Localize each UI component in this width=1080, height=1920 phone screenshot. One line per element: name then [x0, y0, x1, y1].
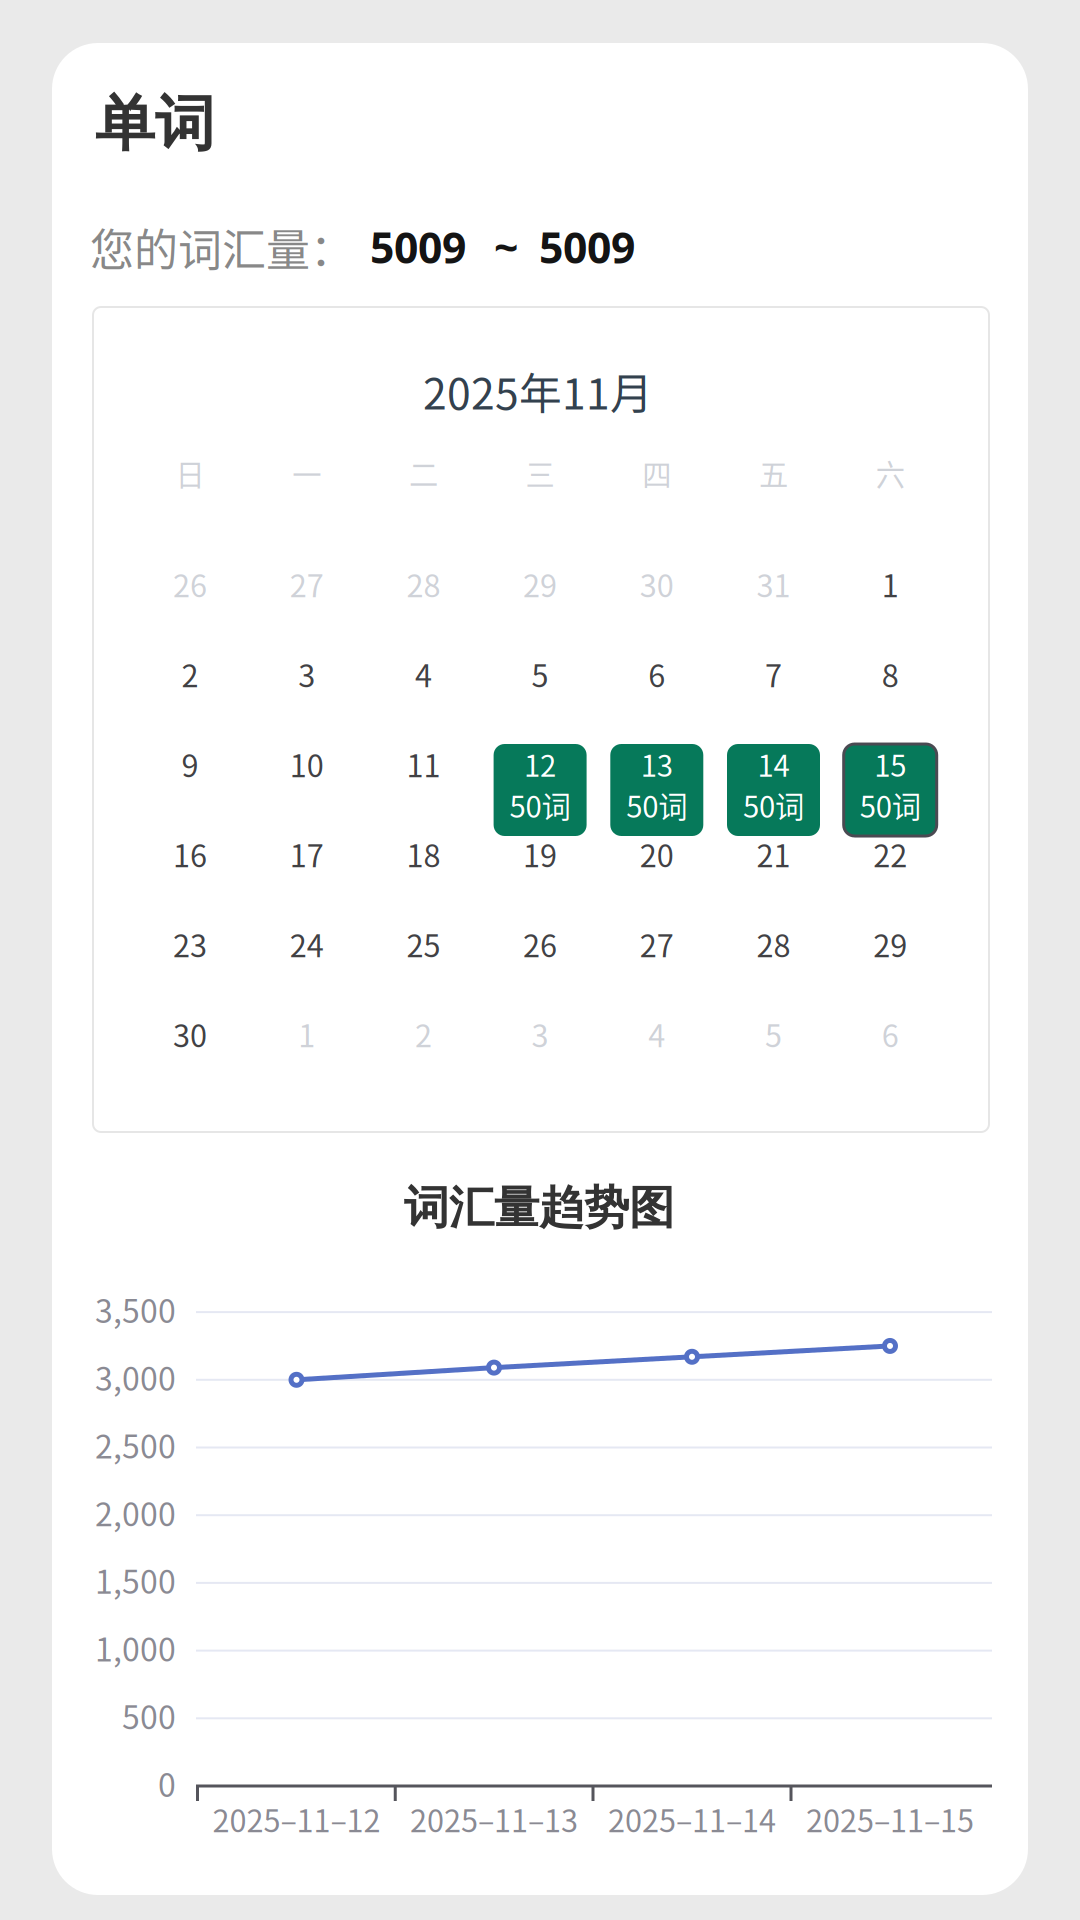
staticText: 8 — [882, 652, 899, 696]
button[interactable]: 1 — [832, 539, 949, 629]
staticText: 27 — [640, 922, 674, 966]
staticText: 2025–11–13 — [410, 1797, 578, 1841]
staticText: 50词 — [626, 784, 687, 826]
button[interactable]: 3 — [248, 629, 365, 719]
staticText: 5009 — [539, 218, 635, 276]
staticText: 12 — [524, 743, 556, 785]
button[interactable]: 24 — [248, 899, 365, 989]
staticText — [653, 742, 660, 786]
staticText: 3,500 — [95, 1286, 176, 1332]
staticText: 29 — [873, 922, 907, 966]
button[interactable]: 21 — [715, 809, 832, 899]
button[interactable]: 2 — [365, 989, 482, 1079]
button[interactable]: 9 — [132, 719, 248, 809]
staticText: 26 — [523, 922, 557, 966]
staticText: 19 — [523, 832, 557, 876]
button[interactable] — [832, 719, 949, 809]
staticText: 14 — [757, 743, 789, 785]
staticText: 1 — [882, 562, 899, 606]
staticText: 10 — [290, 742, 324, 786]
staticText: ~ — [494, 218, 518, 276]
staticText: 二 — [409, 452, 438, 494]
staticText: 词汇量趋势图 — [404, 1179, 674, 1236]
button[interactable]: 28 — [715, 899, 832, 989]
button[interactable]: 30 — [132, 989, 248, 1079]
staticText: 6 — [648, 652, 665, 696]
staticText — [887, 742, 894, 786]
button[interactable]: 20 — [598, 809, 715, 899]
button[interactable]: 23 — [132, 899, 248, 989]
staticText: 15 — [874, 743, 906, 785]
button[interactable]: 26 — [482, 899, 598, 989]
staticText: 28 — [406, 562, 440, 606]
button[interactable]: 30 — [598, 539, 715, 629]
button[interactable]: 12 — [494, 744, 587, 836]
button[interactable]: 16 — [132, 809, 248, 899]
staticText: 3 — [298, 652, 315, 696]
staticText: 3 — [532, 1012, 549, 1056]
staticText: 26 — [173, 562, 207, 606]
button[interactable]: 8 — [832, 629, 949, 719]
button[interactable]: 7 — [715, 629, 832, 719]
button[interactable]: 6 — [832, 989, 949, 1079]
button[interactable]: 14 — [727, 744, 820, 836]
button[interactable]: 2 — [132, 629, 248, 719]
staticText — [537, 742, 544, 786]
button[interactable]: 5 — [482, 629, 598, 719]
button[interactable]: 27 — [598, 899, 715, 989]
staticText: 2025–11–14 — [608, 1797, 776, 1841]
button[interactable]: 25 — [365, 899, 482, 989]
staticText: 24 — [290, 922, 324, 966]
staticText: 5 — [532, 652, 549, 696]
button[interactable] — [715, 719, 832, 809]
staticText: 50词 — [743, 784, 804, 826]
button[interactable]: 15 — [844, 744, 937, 836]
button[interactable]: 1 — [248, 989, 365, 1079]
button[interactable]: 3 — [482, 989, 598, 1079]
button[interactable]: 19 — [482, 809, 598, 899]
staticText: 25 — [406, 922, 440, 966]
button[interactable]: 26 — [132, 539, 248, 629]
button[interactable]: 29 — [482, 539, 598, 629]
button[interactable]: 10 — [248, 719, 365, 809]
button[interactable]: 31 — [715, 539, 832, 629]
staticText: 五 — [759, 452, 788, 494]
button[interactable]: 29 — [832, 899, 949, 989]
button[interactable]: 4 — [365, 629, 482, 719]
staticText: 1,500 — [95, 1557, 176, 1603]
button[interactable]: 17 — [248, 809, 365, 899]
button[interactable]: 4 — [598, 989, 715, 1079]
staticText: 2,000 — [95, 1489, 176, 1535]
staticText: 2025年11月 — [423, 360, 653, 422]
staticText: 16 — [173, 832, 207, 876]
button[interactable]: 22 — [832, 809, 949, 899]
staticText: 您的词汇量： — [90, 215, 354, 279]
staticText: 5 — [765, 1012, 782, 1056]
staticText: 0 — [158, 1760, 176, 1806]
staticText: 30 — [173, 1012, 207, 1056]
button[interactable]: 28 — [365, 539, 482, 629]
staticText: 13 — [641, 743, 673, 785]
staticText: 11 — [406, 742, 440, 786]
button[interactable]: 6 — [598, 629, 715, 719]
staticText: 18 — [406, 832, 440, 876]
staticText: 23 — [173, 922, 207, 966]
staticText: 4 — [415, 652, 432, 696]
button[interactable] — [598, 719, 715, 809]
staticText: 单词 — [95, 86, 215, 162]
staticText: 28 — [756, 922, 790, 966]
staticText: 1,000 — [95, 1624, 176, 1671]
button[interactable]: 27 — [248, 539, 365, 629]
button[interactable] — [482, 719, 598, 809]
button[interactable]: 18 — [365, 809, 482, 899]
button[interactable]: 11 — [365, 719, 482, 809]
button[interactable]: 13 — [610, 744, 703, 836]
staticText: 三 — [526, 452, 555, 494]
staticText: 27 — [290, 562, 324, 606]
staticText: 21 — [756, 832, 790, 876]
button[interactable]: 5 — [715, 989, 832, 1079]
staticText: 7 — [765, 652, 782, 696]
staticText: 2025–11–15 — [806, 1797, 974, 1841]
staticText: 日 — [175, 452, 204, 494]
staticText: 50词 — [510, 784, 571, 826]
